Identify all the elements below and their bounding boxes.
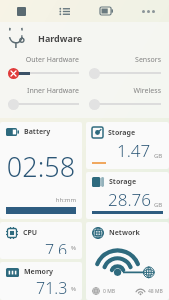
staticText: Outer Hardware — [8, 55, 79, 65]
button[interactable]: Inner Hardware — [8, 86, 79, 110]
staticText: Inner Hardware — [8, 86, 79, 96]
staticText: 0 MB — [103, 288, 115, 295]
staticText: 71.3 — [36, 277, 68, 295]
staticText: CPU — [23, 228, 38, 238]
staticText: Storage — [108, 128, 136, 138]
button[interactable]: Battery — [0, 122, 82, 219]
staticText: GB — [154, 201, 163, 209]
button[interactable]: More options — [127, 0, 169, 22]
staticText: 02:58 — [6, 148, 76, 185]
staticText: hh:mm — [6, 196, 76, 204]
button[interactable]: CPU — [0, 222, 82, 259]
staticText: Wireless — [89, 86, 161, 96]
staticText: Network — [109, 228, 140, 238]
button[interactable]: Battery status — [85, 0, 127, 22]
staticText: 7.6 — [45, 239, 68, 254]
button[interactable]: Network — [86, 222, 169, 300]
staticText: 48 MB — [148, 288, 163, 295]
button[interactable]: Storage — [86, 122, 169, 169]
button[interactable]: Outer Hardware — [8, 55, 79, 79]
button[interactable]: Storage — [86, 172, 169, 219]
button[interactable]: Memory — [0, 262, 82, 300]
staticText: % — [71, 244, 76, 252]
button[interactable]: List — [43, 0, 85, 22]
staticText: % — [71, 285, 76, 293]
staticText: Sensors — [89, 55, 161, 65]
staticText: GB — [154, 152, 163, 160]
staticText: Battery — [24, 127, 51, 137]
staticText: 28.76 — [108, 188, 151, 211]
staticText: Storage — [109, 177, 137, 187]
staticText: Memory — [24, 267, 54, 277]
staticText: 1.47 — [117, 139, 151, 162]
staticText: Hardware — [38, 32, 83, 44]
button[interactable]: Device — [0, 0, 43, 22]
button[interactable]: Wireless — [89, 86, 161, 110]
button[interactable]: Sensors — [89, 55, 161, 79]
